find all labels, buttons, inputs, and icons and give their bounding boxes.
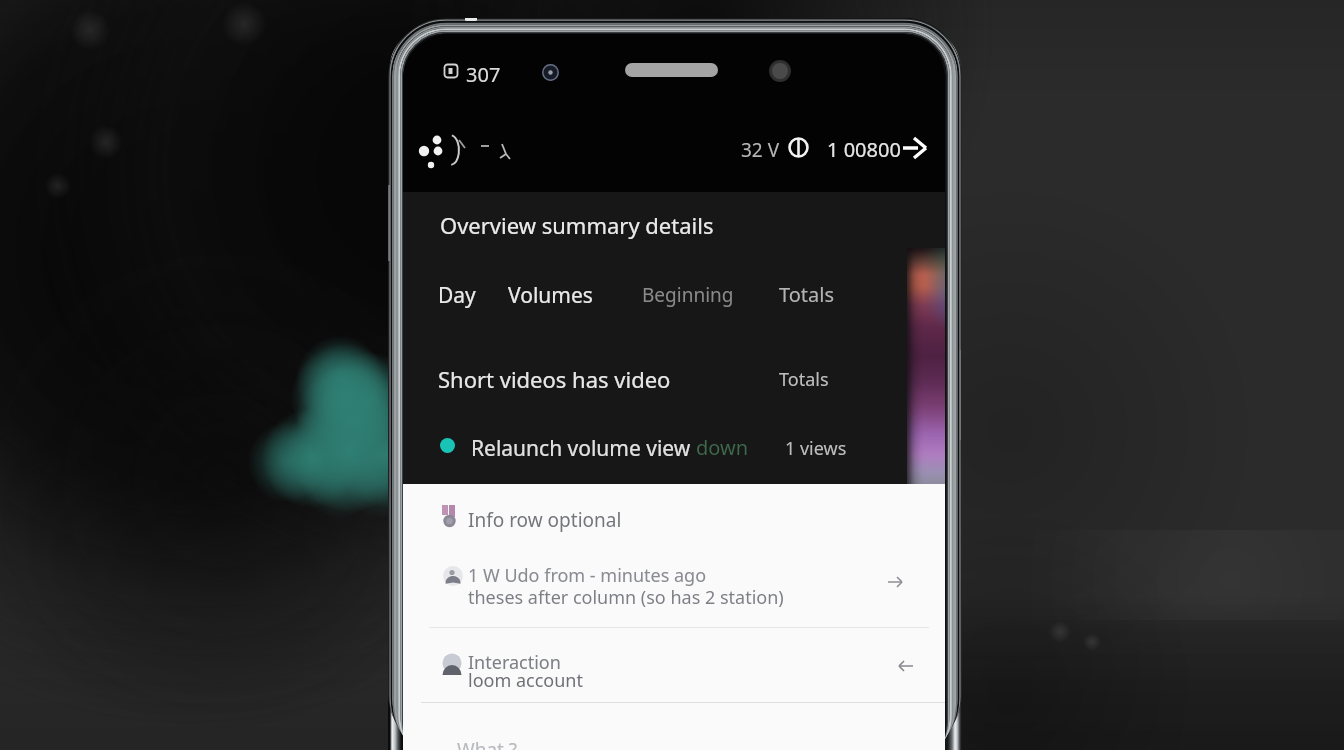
staticText: loom account (468, 668, 583, 693)
staticText: Totals (779, 367, 829, 392)
staticText: 1 views (785, 436, 847, 461)
staticText: Totals (779, 281, 834, 308)
staticText: 1 W Udo from - minutes ago (468, 563, 707, 588)
button[interactable]: Volumes (495, 270, 613, 314)
staticText: 1 00800 (827, 136, 901, 163)
staticText: Interaction (468, 650, 561, 675)
button[interactable]: Filter (475, 124, 521, 170)
staticText: What ? (457, 737, 518, 750)
staticText: theses after column (so has 2 station) (468, 585, 784, 610)
staticText: Short videos has video (438, 364, 671, 394)
button[interactable]: Media preview (907, 248, 945, 488)
button[interactable]: Interaction (403, 642, 945, 704)
staticText: 307 (466, 61, 501, 88)
button[interactable]: Beginning (629, 270, 737, 314)
button[interactable]: Share (886, 572, 906, 592)
button[interactable]: Next (901, 132, 933, 164)
button[interactable]: 1 W Udo from - minutes ago (403, 556, 945, 626)
staticText: Volumes (508, 281, 593, 310)
button[interactable]: Totals (766, 270, 864, 314)
staticText: Relaunch volume view (471, 434, 696, 463)
staticText: 32 V (741, 137, 780, 163)
staticText: down (696, 434, 749, 461)
button[interactable]: Info row optional (403, 492, 945, 550)
button[interactable]: Contrast (788, 137, 809, 158)
button[interactable]: Short videos has video (403, 355, 945, 399)
staticText: Beginning (642, 282, 734, 308)
button[interactable]: Day (427, 270, 489, 314)
button[interactable]: Menu (413, 118, 469, 174)
staticText: Info row optional (468, 507, 622, 533)
button[interactable]: Overview summary details (427, 200, 807, 244)
staticText: Day (438, 281, 476, 310)
button[interactable]: Reply (896, 656, 916, 676)
button[interactable]: Relaunch volume view (403, 423, 945, 467)
staticText: Overview summary details (440, 210, 714, 240)
